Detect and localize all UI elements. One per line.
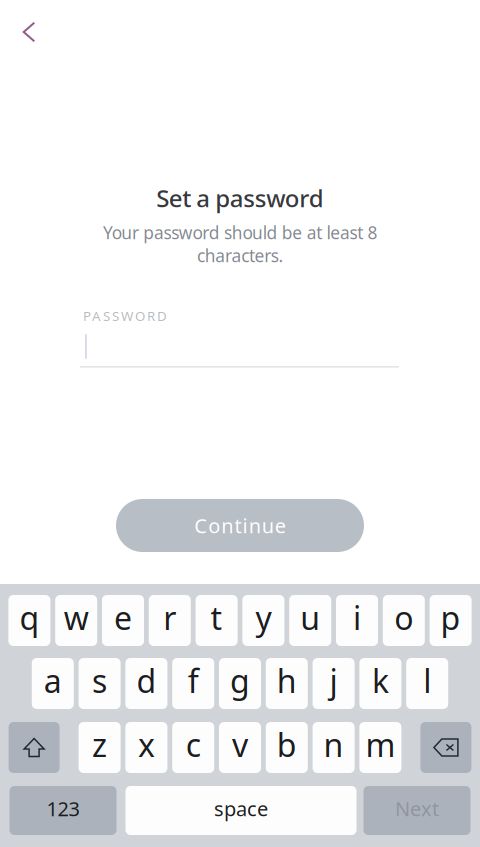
button[interactable]: h [266,658,308,709]
staticText: e [114,596,132,639]
staticText: Set a password [156,182,324,214]
staticText: j [330,659,338,702]
staticText: q [19,596,39,639]
staticText: t [211,596,223,639]
staticText: b [277,723,297,766]
staticText: Your password should be at least 8 chara… [103,221,377,267]
staticText: n [324,723,344,766]
staticText: m [365,723,395,766]
button[interactable]: Shift [9,722,60,773]
staticText: k [372,659,389,702]
staticText: a [44,659,62,702]
button[interactable]: f [172,658,214,709]
staticText: p [441,596,461,639]
staticText: Next [395,795,439,822]
button[interactable]: r [149,595,191,646]
staticText: PASSWORD [83,307,167,325]
button[interactable]: t [196,595,238,646]
button[interactable]: o [383,595,425,646]
staticText: h [277,659,297,702]
button[interactable]: q [8,595,50,646]
button[interactable]: m [359,722,401,773]
button[interactable]: c [172,722,214,773]
button[interactable]: l [406,658,448,709]
button[interactable]: j [313,658,355,709]
staticText: f [188,659,199,702]
button[interactable]: PASSWORD [80,310,400,372]
staticText: c [186,723,201,766]
staticText: v [232,723,248,766]
staticText: y [255,596,271,639]
button[interactable]: g [219,658,261,709]
button[interactable]: z [79,722,121,773]
staticText: z [92,723,107,766]
button[interactable]: y [242,595,284,646]
button[interactable]: b [266,722,308,773]
staticText: 123 [46,795,79,822]
button[interactable]: d [125,658,167,709]
button[interactable]: s [79,658,121,709]
button[interactable]: Next [363,786,470,835]
button[interactable]: n [313,722,355,773]
staticText: space [214,795,268,822]
button[interactable]: Delete [420,722,471,773]
button[interactable]: a [32,658,74,709]
button[interactable]: Numbers [9,786,116,835]
button[interactable]: i [336,595,378,646]
staticText: g [230,659,250,702]
button[interactable]: x [125,722,167,773]
staticText: r [163,596,176,639]
staticText: o [394,596,413,639]
button[interactable]: w [55,595,97,646]
button[interactable]: v [219,722,261,773]
staticText: i [353,596,361,639]
button[interactable]: u [289,595,331,646]
button[interactable]: e [102,595,144,646]
button[interactable]: Continue [116,499,364,552]
button[interactable]: Space [125,786,356,835]
staticText: l [423,659,431,702]
staticText: s [92,659,107,702]
button[interactable]: p [430,595,472,646]
staticText: u [300,596,320,639]
staticText: Continue [194,512,286,539]
staticText: w [64,596,89,639]
staticText: d [136,659,156,702]
button[interactable]: k [359,658,401,709]
button[interactable]: Back [7,10,51,54]
staticText: x [138,723,155,766]
